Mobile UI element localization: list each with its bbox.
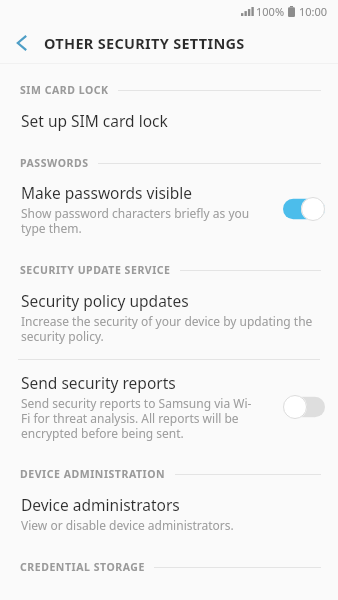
staticText: PASSWORDS (20, 156, 89, 170)
staticText: OTHER SECURITY SETTINGS (44, 33, 245, 53)
staticText: Send security reports to Samsung via Wi-… (21, 395, 252, 441)
button[interactable]: Send security reports (0, 360, 338, 457)
staticText: DEVICE ADMINISTRATION (20, 467, 166, 481)
staticText: Send security reports (21, 372, 176, 393)
button[interactable]: Switch off (283, 395, 325, 419)
button[interactable]: Device administrators (0, 481, 338, 552)
staticText: CREDENTIAL STORAGE (20, 560, 145, 574)
staticText: SECURITY UPDATE SERVICE (20, 263, 171, 277)
staticText: Device administrators (21, 494, 180, 515)
staticText: SIM CARD LOCK (20, 83, 109, 97)
button[interactable]: Security policy updates (0, 277, 338, 359)
button[interactable]: Back (0, 22, 44, 63)
staticText: 100% (256, 4, 285, 19)
staticText: Set up SIM card lock (21, 110, 168, 131)
button[interactable]: Set up SIM card lock (0, 97, 338, 148)
staticText: View or disable device administrators. (21, 517, 234, 533)
button[interactable]: Switch on (283, 197, 325, 221)
staticText: Show password characters briefly as you … (21, 205, 250, 236)
button[interactable]: Make passwords visible (0, 170, 338, 252)
staticText: 10:00 (299, 4, 328, 19)
staticText: Security policy updates (21, 290, 189, 311)
staticText: Make passwords visible (21, 182, 193, 203)
staticText: Increase the security of your device by … (21, 313, 313, 344)
